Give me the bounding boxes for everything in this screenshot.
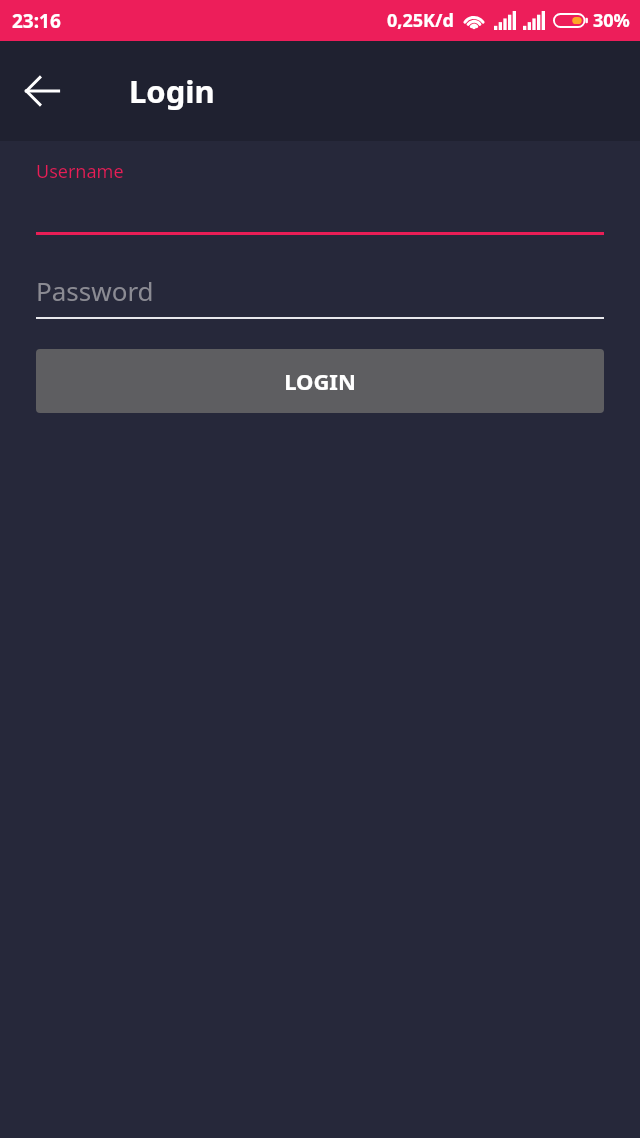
staticText: Username	[36, 159, 124, 184]
staticText: 30%	[593, 8, 630, 33]
staticText: 23:16	[12, 8, 61, 34]
staticText: 0,25K/d	[387, 8, 454, 33]
button[interactable]: Username	[36, 159, 604, 235]
button[interactable]: LOGIN	[36, 349, 604, 413]
staticText: LOGIN	[284, 366, 356, 396]
staticText: Password	[36, 273, 154, 308]
button[interactable]: Password	[36, 273, 604, 319]
staticText: Login	[129, 70, 215, 112]
button[interactable]: Back	[18, 67, 66, 115]
